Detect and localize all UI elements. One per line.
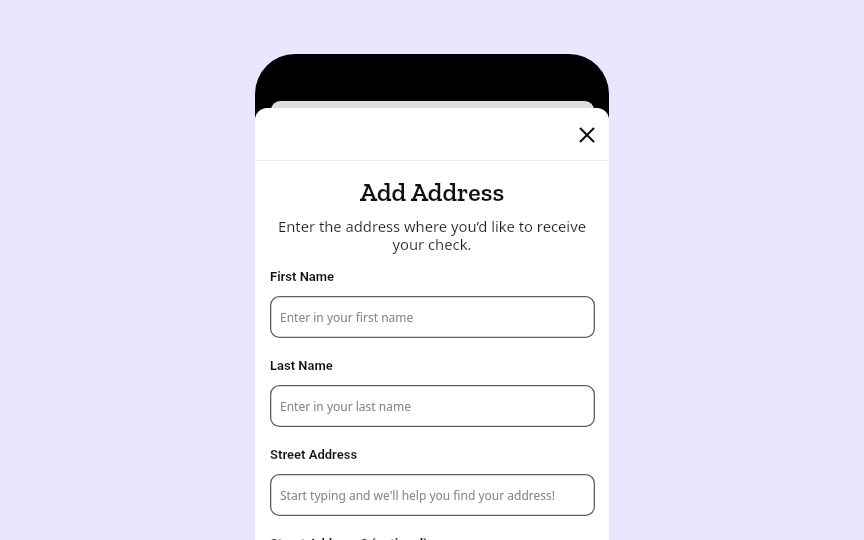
staticText: Last Name bbox=[270, 358, 333, 373]
staticText: Enter the address where you’d like to re… bbox=[265, 216, 599, 254]
button[interactable]: Enter in your last name bbox=[270, 385, 595, 427]
staticText: Enter in your last name bbox=[280, 398, 411, 414]
staticText: Start typing and we'll help you find you… bbox=[280, 487, 556, 503]
button[interactable]: Start typing and we'll help you find you… bbox=[270, 474, 595, 516]
button[interactable]: Enter in your first name bbox=[270, 296, 595, 338]
staticText: Enter in your first name bbox=[280, 309, 414, 325]
staticText: First Name bbox=[270, 269, 335, 284]
staticText: Street Address 2 (optional) bbox=[270, 536, 428, 540]
staticText: Street Address bbox=[270, 447, 358, 462]
button[interactable]: Close bbox=[565, 113, 609, 157]
staticText: Add Address bbox=[255, 176, 609, 207]
